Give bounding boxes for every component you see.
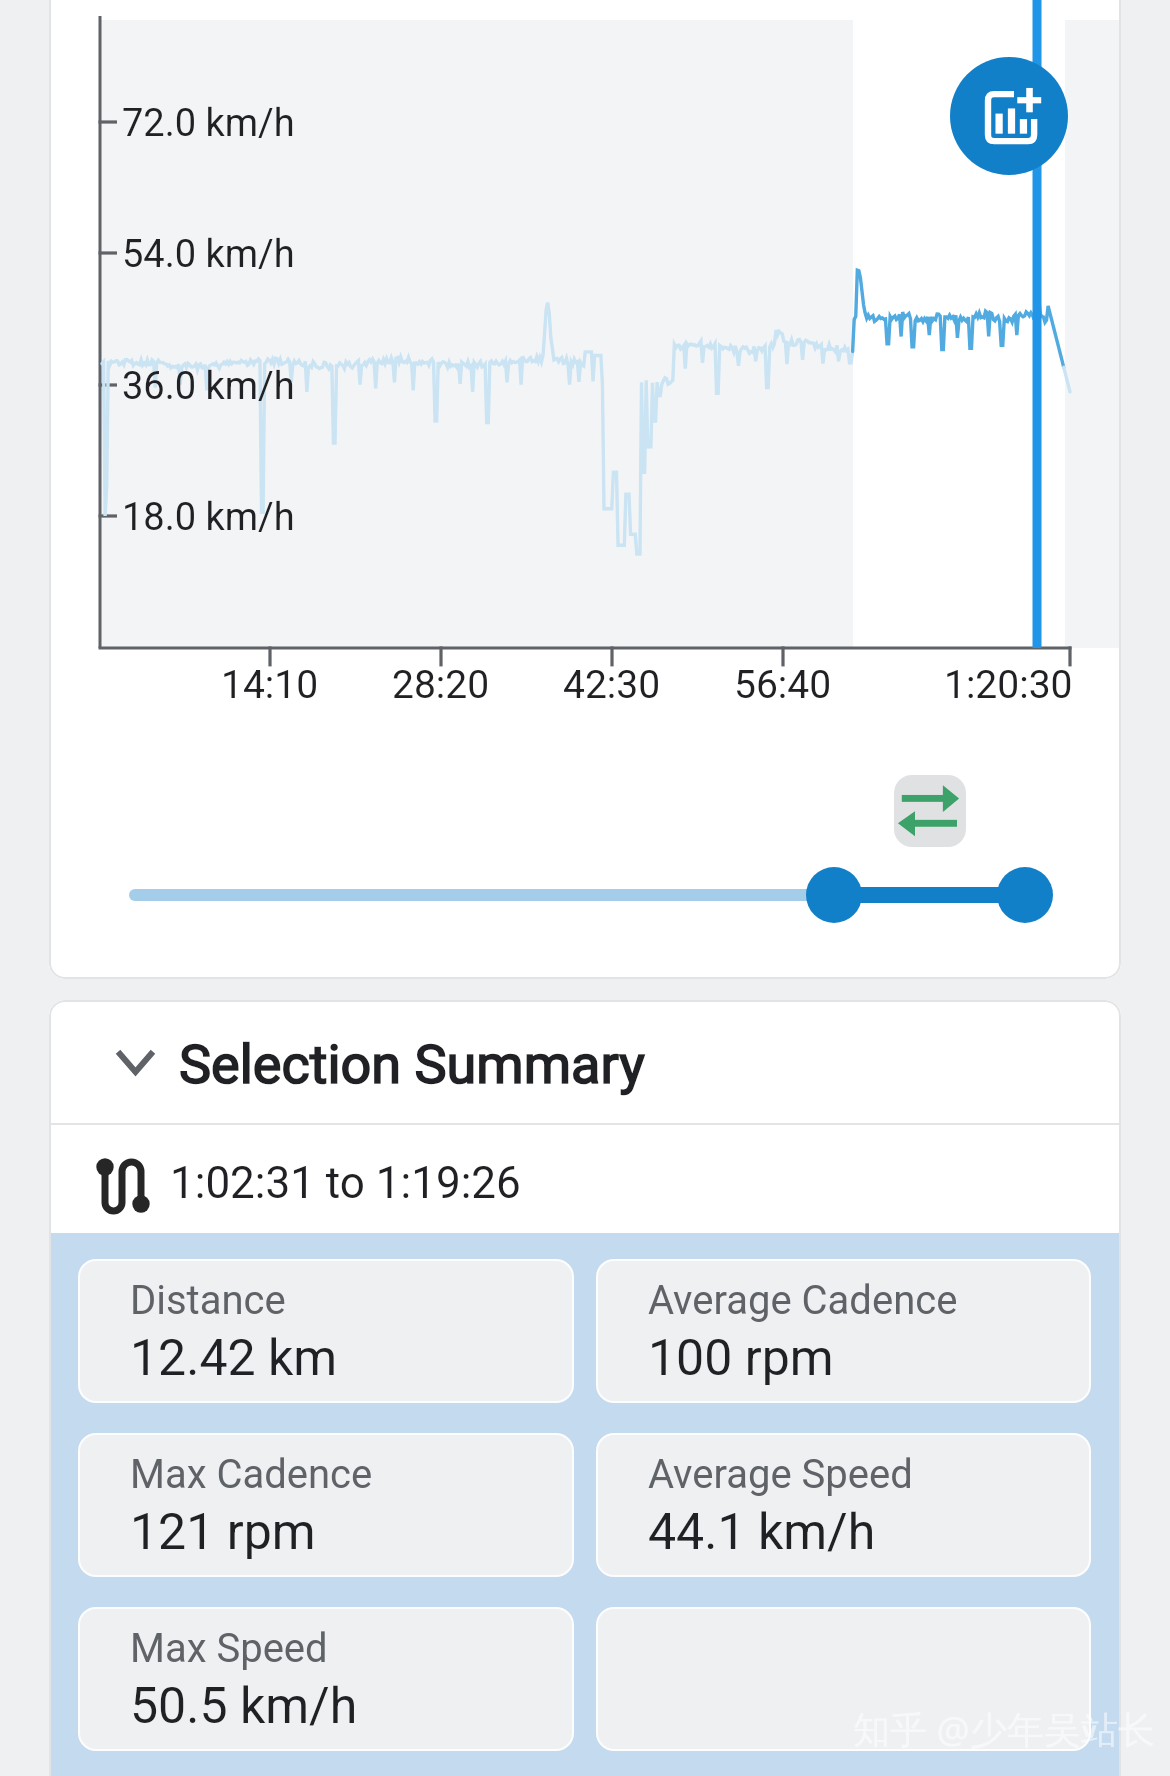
staticText: 18.0 km/h [122, 495, 295, 540]
staticText: Average Speed [648, 1451, 913, 1498]
staticText: 14:10 [221, 662, 319, 708]
staticText: 36.0 km/h [122, 364, 295, 409]
staticText: 56:40 [734, 662, 832, 708]
staticText: 1:02:31 to 1:19:26 [170, 1157, 521, 1209]
staticText: 50.5 km/h [130, 1677, 358, 1736]
staticText: 54.0 km/h [122, 232, 295, 277]
staticText: 100 rpm [648, 1329, 834, 1388]
staticText: Selection Summary [179, 1033, 645, 1096]
staticText: Max Cadence [130, 1451, 373, 1498]
staticText: 12.42 km [130, 1329, 338, 1388]
staticText: Max Speed [130, 1625, 328, 1672]
staticText: 44.1 km/h [648, 1503, 876, 1562]
button[interactable]: Distance [78, 1259, 574, 1403]
button[interactable]: Max Speed [78, 1607, 574, 1751]
button[interactable]: Selection Summary [49, 1000, 1121, 1123]
button[interactable]: Add chart [950, 57, 1068, 175]
button[interactable]: Average Cadence [596, 1259, 1091, 1403]
button[interactable]: Average Speed [596, 1433, 1091, 1577]
staticText: Average Cadence [648, 1277, 958, 1324]
button[interactable]: Max Cadence [78, 1433, 574, 1577]
staticText: 42:30 [563, 662, 661, 708]
button[interactable] [596, 1607, 1091, 1751]
staticText: 121 rpm [130, 1503, 316, 1562]
staticText: Distance [130, 1277, 286, 1324]
staticText: 知乎 @少年吴站长 [853, 1703, 1155, 1754]
staticText: 72.0 km/h [122, 101, 295, 146]
button[interactable]: Swap selection [894, 775, 966, 847]
staticText: 1:20:30 [944, 662, 1073, 708]
staticText: 28:20 [392, 662, 490, 708]
